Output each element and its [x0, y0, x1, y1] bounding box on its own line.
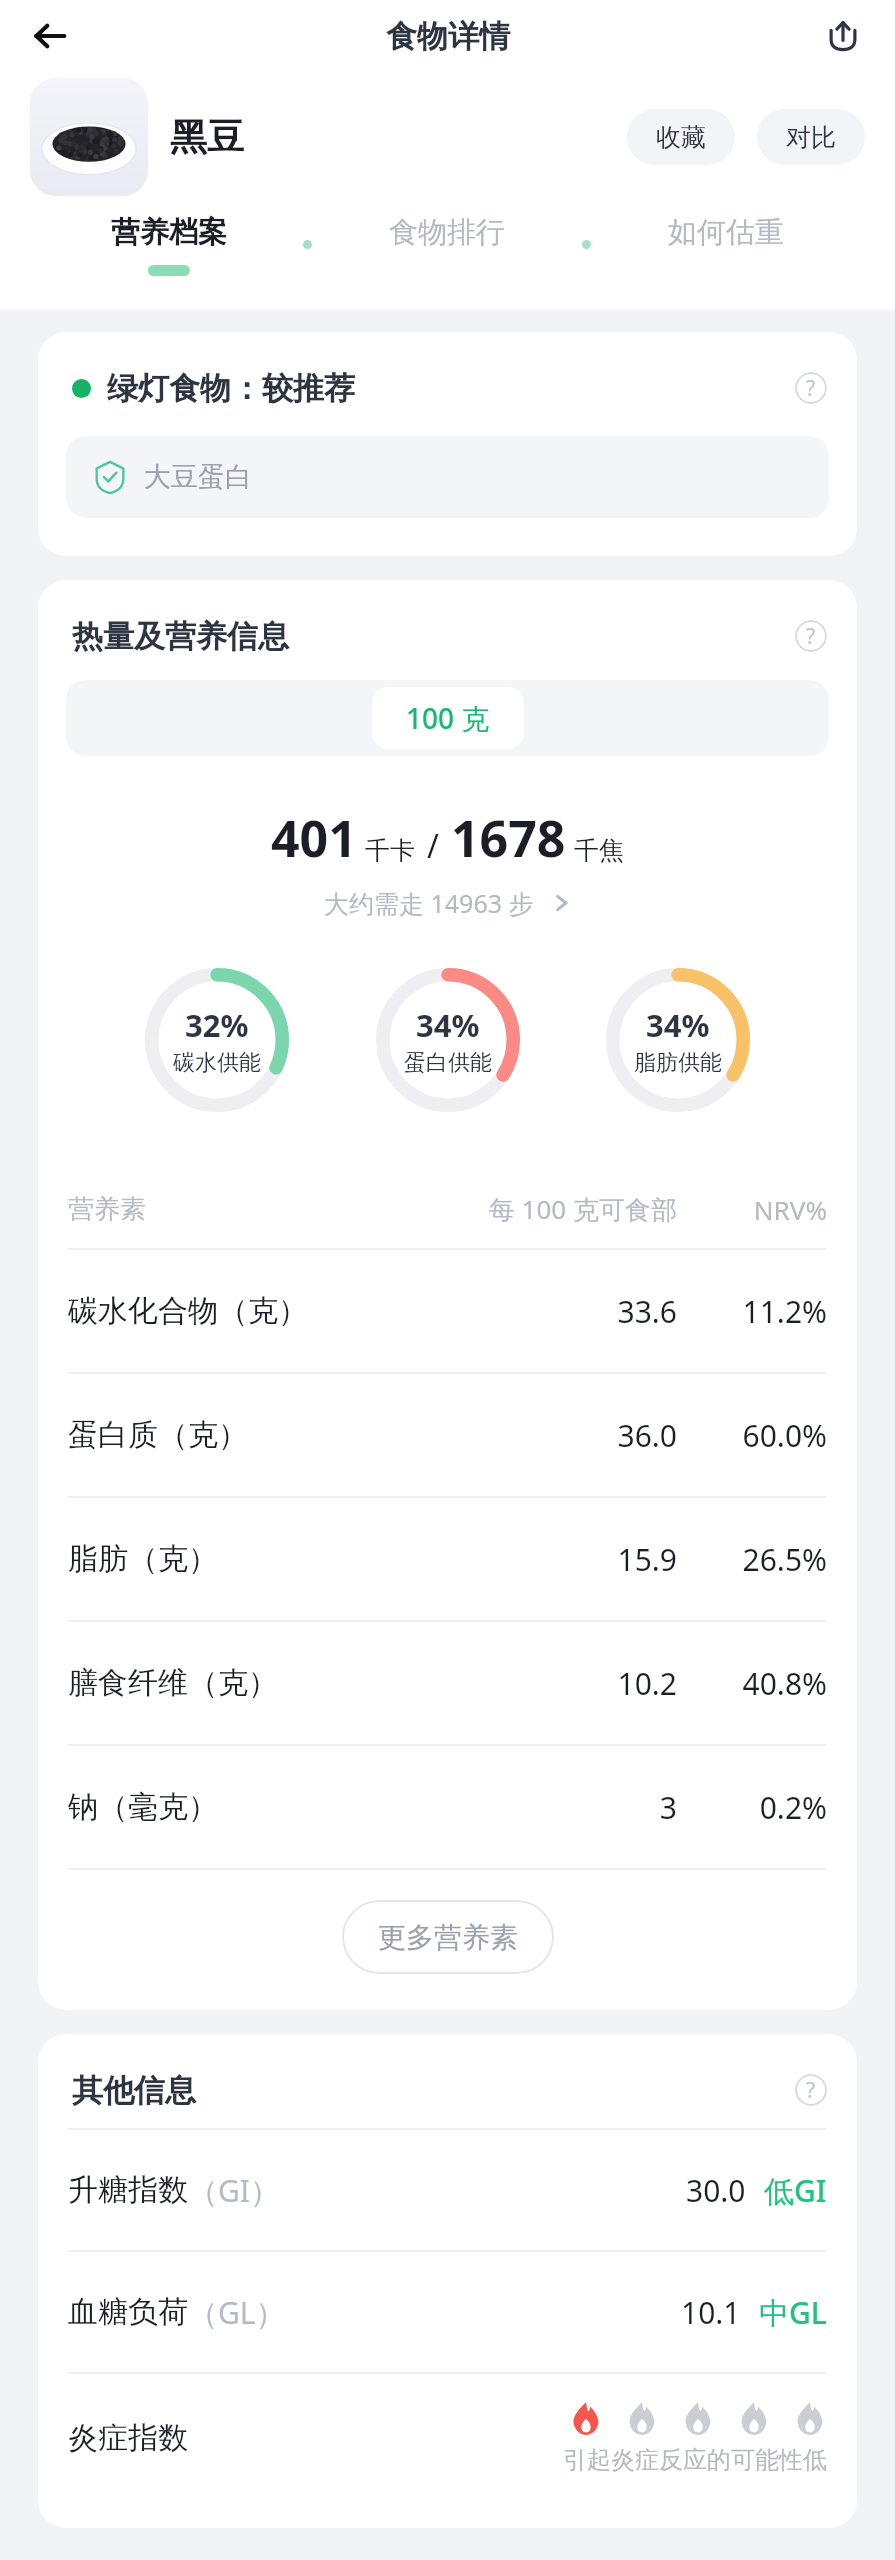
staticText: NRV% [699, 1192, 827, 1227]
staticText: 大约需走 14963 步 [324, 886, 534, 920]
staticText: 营养素 [68, 1193, 146, 1226]
staticText: 36.0 [557, 1415, 677, 1456]
staticText: ? [806, 374, 816, 403]
staticText: 千焦 [574, 835, 624, 866]
staticText: 33.6 [557, 1291, 677, 1332]
button[interactable]: Help [789, 366, 833, 410]
staticText: 蛋白供能 [404, 1049, 492, 1077]
staticText: 其他信息 [72, 2071, 196, 2110]
staticText: ? [806, 622, 816, 651]
staticText: 炎症指数 [68, 2419, 188, 2457]
staticText: 绿灯食物：较推荐 [107, 369, 355, 408]
staticText: 升糖指数 [68, 2171, 188, 2209]
staticText: （GL） [188, 2292, 286, 2333]
staticText: / [427, 824, 439, 868]
staticText: 大豆蛋白 [144, 460, 252, 494]
button[interactable]: 大约需走 14963 步 [38, 886, 857, 920]
staticText: 3 [557, 1787, 677, 1828]
staticText: 钠（毫克） [68, 1788, 218, 1826]
button[interactable]: 对比 [757, 109, 865, 165]
button[interactable]: 升糖指数 [38, 2130, 857, 2250]
staticText: 中GL [759, 2292, 827, 2333]
staticText: 热量及营养信息 [72, 617, 289, 656]
staticText: 34% [646, 1004, 710, 1046]
staticText: 脂肪（克） [68, 1540, 218, 1578]
button[interactable]: Help [789, 614, 833, 658]
staticText: 30.0 [686, 2170, 746, 2211]
staticText: （GI） [188, 2170, 281, 2211]
staticText: 1678 [451, 804, 566, 872]
staticText: 10.1 [681, 2292, 741, 2333]
staticText: 更多营养素 [378, 1920, 518, 1955]
staticText: 401 [271, 804, 357, 872]
staticText: 对比 [786, 122, 836, 153]
staticText: 10.2 [557, 1663, 677, 1704]
staticText: 0.2% [699, 1787, 827, 1828]
button[interactable]: 如何估重 [591, 214, 861, 265]
button[interactable] [30, 78, 148, 196]
staticText: 膳食纤维（克） [68, 1664, 278, 1702]
staticText: 60.0% [699, 1415, 827, 1456]
staticText: 碳水化合物（克） [68, 1292, 308, 1330]
staticText: 100 克 [406, 699, 490, 737]
staticText: 40.8% [699, 1663, 827, 1704]
staticText: 34% [416, 1004, 480, 1046]
button[interactable]: 更多营养素 [342, 1900, 554, 1974]
staticText: 食物排行 [389, 214, 505, 251]
button[interactable]: 100 克 [372, 687, 524, 749]
staticText: 低GI [764, 2170, 827, 2211]
button[interactable]: Back [18, 4, 82, 68]
staticText: 千卡 [365, 835, 415, 866]
staticText: 蛋白质（克） [68, 1416, 248, 1454]
staticText: 收藏 [656, 122, 706, 153]
staticText: ? [806, 2076, 816, 2105]
staticText: 碳水供能 [173, 1049, 261, 1077]
button[interactable]: 食物排行 [312, 214, 582, 265]
button[interactable]: Help [789, 2068, 833, 2112]
staticText: 32% [185, 1004, 249, 1046]
staticText: 11.2% [699, 1291, 827, 1332]
button[interactable]: 血糖负荷 [38, 2252, 857, 2372]
staticText: 每 100 克可食部 [457, 1191, 677, 1227]
staticText: 引起炎症反应的可能性低 [563, 2445, 827, 2475]
staticText: 26.5% [699, 1539, 827, 1580]
button[interactable]: Share [811, 4, 875, 68]
staticText: 食物详情 [386, 17, 510, 56]
button[interactable]: 大豆蛋白 [66, 436, 829, 518]
button[interactable]: 收藏 [627, 109, 735, 165]
staticText: 15.9 [557, 1539, 677, 1580]
staticText: 黑豆 [170, 114, 244, 161]
button[interactable]: 营养档案 [34, 214, 303, 276]
staticText: 血糖负荷 [68, 2293, 188, 2331]
staticText: 如何估重 [668, 214, 784, 251]
staticText: 脂肪供能 [634, 1049, 722, 1077]
staticText: 营养档案 [111, 214, 227, 251]
